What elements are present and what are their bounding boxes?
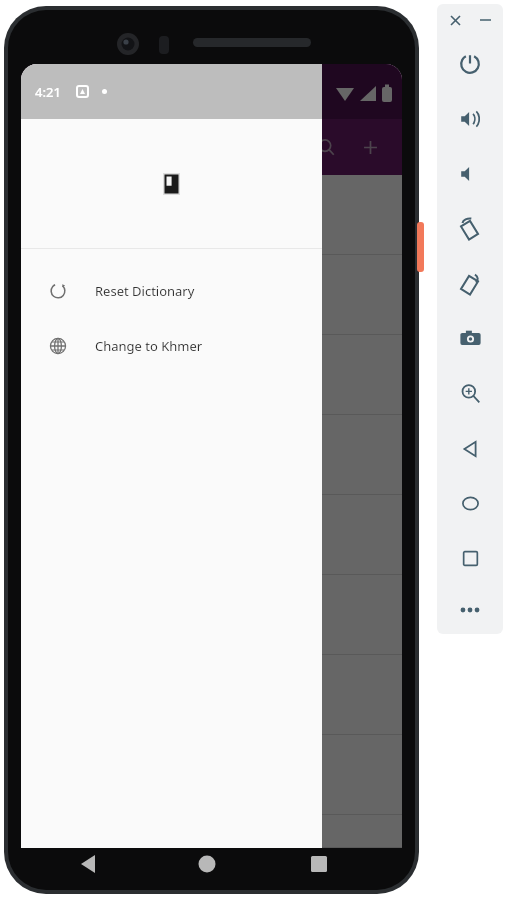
staticText: Change to Khmer bbox=[95, 337, 203, 355]
button[interactable]: Power bbox=[437, 36, 503, 91]
staticText: Reset Dictionary bbox=[95, 282, 195, 300]
button[interactable]: Volume up bbox=[437, 91, 503, 146]
button[interactable]: Rotate left bbox=[437, 201, 503, 256]
button[interactable]: Rotate right bbox=[437, 256, 503, 311]
button[interactable]: Close bbox=[444, 9, 466, 31]
button[interactable]: Search bbox=[304, 125, 348, 169]
button[interactable]: More bbox=[437, 586, 503, 634]
button[interactable]: Zoom bbox=[437, 366, 503, 421]
button[interactable]: Add word bbox=[348, 125, 392, 169]
button[interactable]: Reset Dictionary bbox=[21, 263, 322, 318]
button[interactable]: Change to Khmer bbox=[21, 318, 322, 373]
button[interactable]: Overview bbox=[437, 531, 503, 586]
button[interactable]: Home bbox=[437, 476, 503, 531]
staticText: 4:21 bbox=[35, 83, 61, 101]
button[interactable]: Take screenshot bbox=[437, 311, 503, 366]
button[interactable]: Volume down bbox=[437, 146, 503, 201]
button[interactable]: Back bbox=[437, 421, 503, 476]
button[interactable]: Minimize bbox=[474, 9, 496, 31]
